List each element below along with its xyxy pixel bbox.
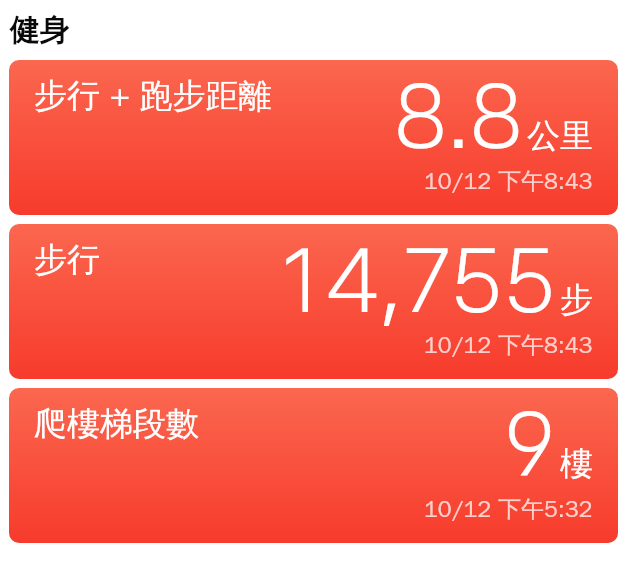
button[interactable]: 步行 bbox=[9, 224, 618, 379]
button[interactable]: 爬樓梯段數 bbox=[9, 388, 618, 543]
staticText: 8.8 bbox=[394, 62, 523, 169]
staticText: 9 bbox=[503, 390, 556, 497]
staticText: 樓 bbox=[560, 443, 593, 485]
staticText: 步 bbox=[560, 279, 593, 321]
staticText: 爬樓梯段數 bbox=[34, 403, 199, 445]
staticText: 公里 bbox=[527, 115, 593, 157]
staticText: 健身 bbox=[10, 11, 70, 49]
staticText: 14,755 bbox=[281, 226, 556, 333]
staticText: 10/12 下午8:43 bbox=[424, 167, 593, 196]
staticText: 10/12 下午5:32 bbox=[424, 495, 593, 524]
button[interactable]: 步行 + 跑步距離 bbox=[9, 60, 618, 215]
staticText: 步行 bbox=[34, 239, 100, 281]
staticText: 10/12 下午8:43 bbox=[424, 331, 593, 360]
staticText: 步行 + 跑步距離 bbox=[34, 75, 272, 117]
